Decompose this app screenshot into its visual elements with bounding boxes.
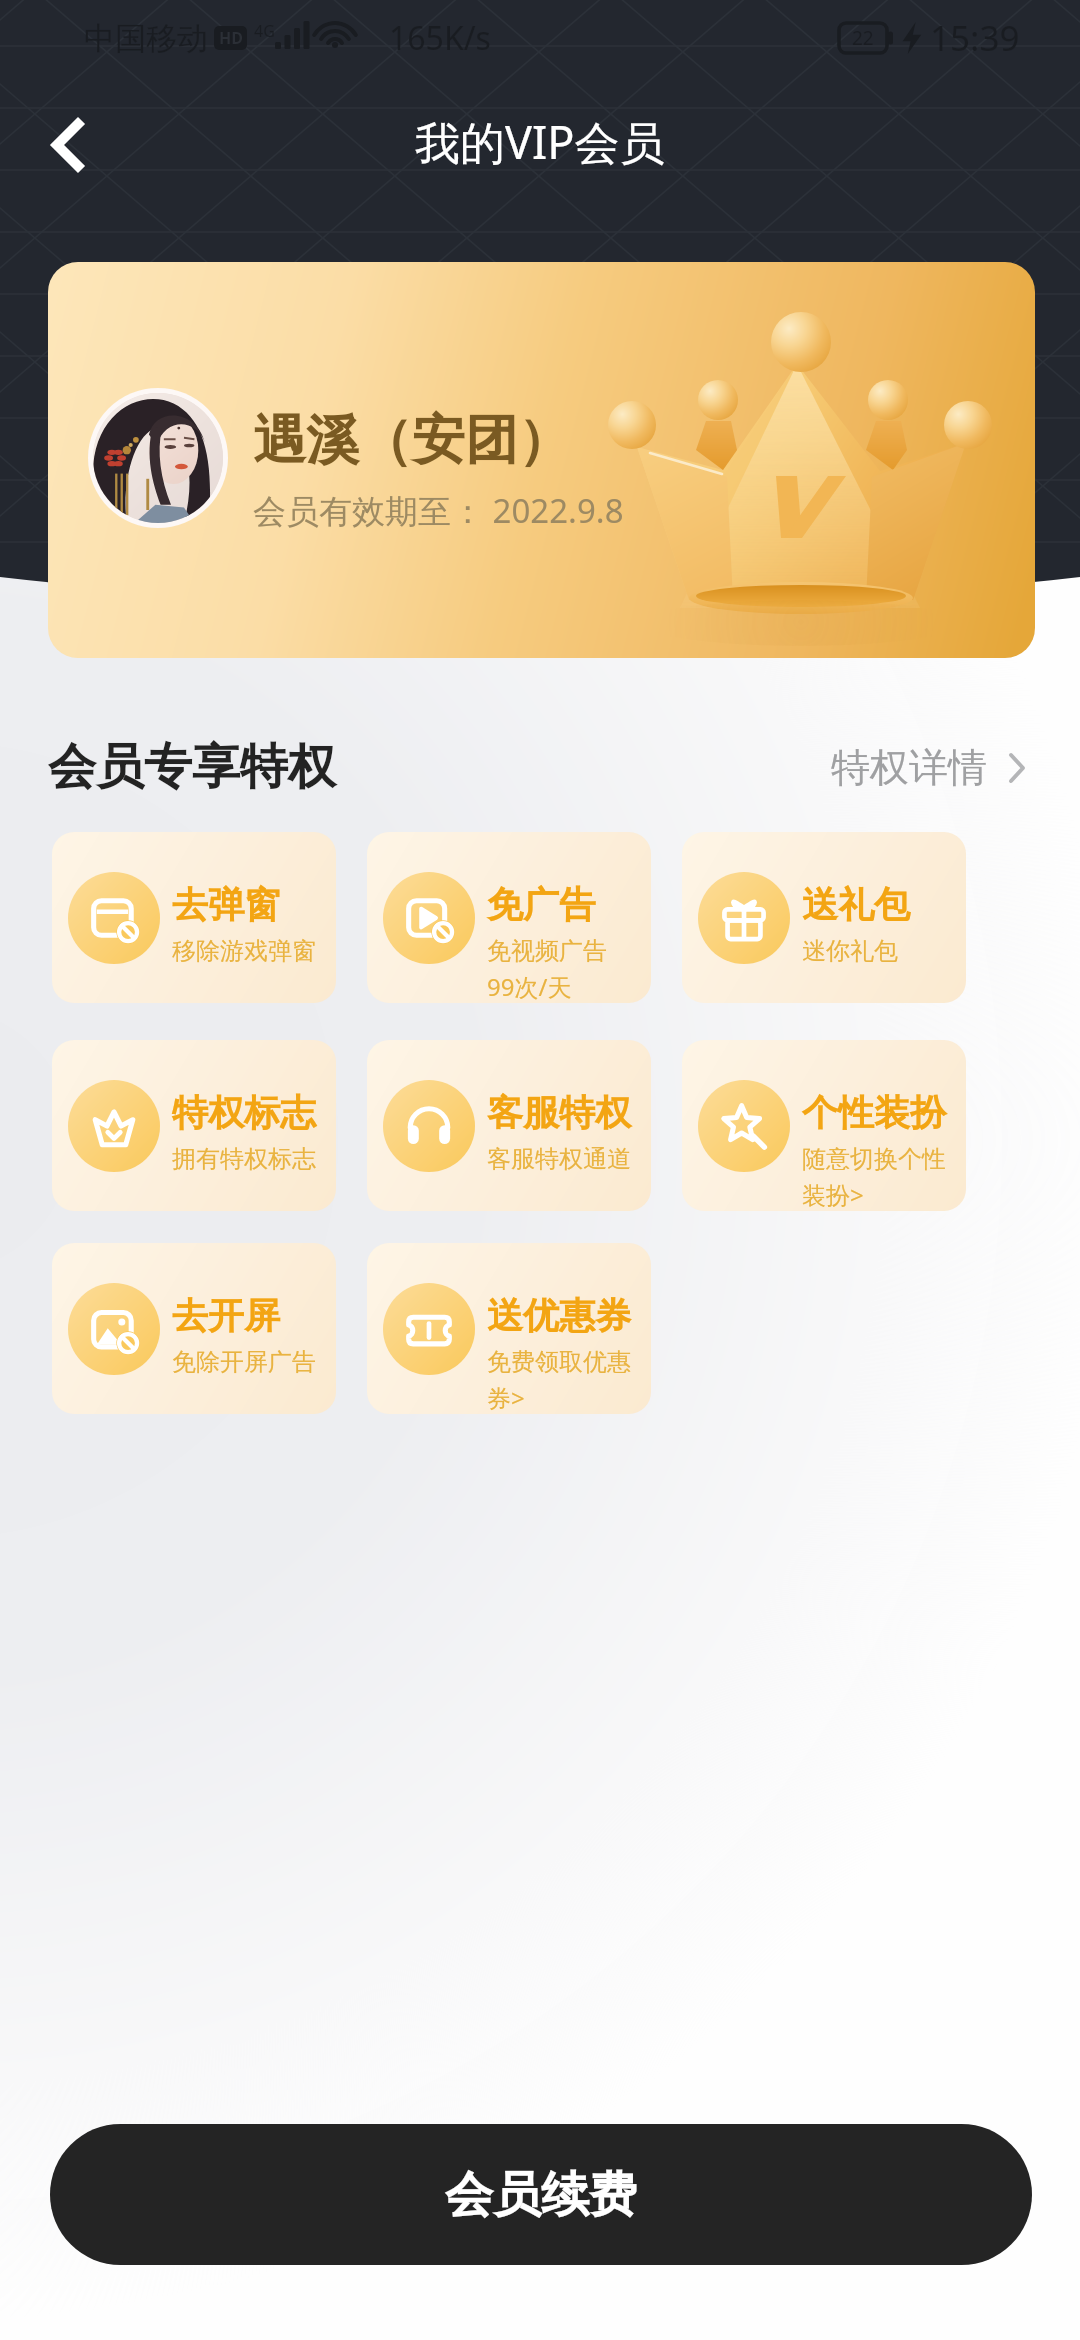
staticText: 22 xyxy=(852,25,874,51)
staticText: 迷你礼包 xyxy=(802,936,898,966)
staticText: 中国移动 xyxy=(84,19,208,58)
staticText: 随意切换个性 装扮> xyxy=(802,1144,946,1211)
staticText: 遇溪（安团） xyxy=(253,407,571,474)
button[interactable]: 去弹窗 xyxy=(52,832,336,1003)
staticText: 165K/s xyxy=(389,16,491,60)
button[interactable]: 送礼包 xyxy=(682,832,966,1003)
button[interactable]: 特权详情 xyxy=(831,743,1025,792)
staticText: 会员有效期至： 2022.9.8 xyxy=(253,488,624,533)
button[interactable]: Back xyxy=(24,102,110,188)
staticText: 送优惠券 xyxy=(487,1293,631,1338)
button[interactable]: 个性装扮 xyxy=(682,1040,966,1211)
button[interactable]: 去开屏 xyxy=(52,1243,336,1414)
staticText: 会员专享特权 xyxy=(48,737,336,797)
staticText: 15:39 xyxy=(930,14,1020,62)
staticText: 移除游戏弹窗 xyxy=(172,936,316,966)
button[interactable]: 遇溪（安团） xyxy=(48,262,1035,658)
staticText: 客服特权通道 xyxy=(487,1144,631,1174)
staticText: 客服特权 xyxy=(487,1090,631,1135)
staticText: 特权标志 xyxy=(172,1090,316,1135)
staticText: 特权详情 xyxy=(831,743,987,792)
staticText: HD xyxy=(219,27,243,49)
staticText: 去开屏 xyxy=(172,1293,280,1338)
staticText: 免除开屏广告 xyxy=(172,1347,316,1377)
staticText: 送礼包 xyxy=(802,882,910,927)
staticText: 会员续费 xyxy=(445,2165,637,2225)
staticText: 免视频广告 99次/天 xyxy=(487,936,607,1003)
button[interactable]: 会员续费 xyxy=(50,2124,1032,2265)
button[interactable]: 特权标志 xyxy=(52,1040,336,1211)
button[interactable]: 免广告 xyxy=(367,832,651,1003)
button[interactable]: 客服特权 xyxy=(367,1040,651,1211)
staticText: 免费领取优惠 券> xyxy=(487,1347,631,1414)
staticText: 免广告 xyxy=(487,882,595,927)
staticText: 个性装扮 xyxy=(802,1090,946,1135)
button[interactable]: 送优惠券 xyxy=(367,1243,651,1414)
staticText: 4G xyxy=(254,20,275,42)
staticText: 我的VIP会员 xyxy=(415,111,665,172)
staticText: 拥有特权标志 xyxy=(172,1144,316,1174)
staticText: 去弹窗 xyxy=(172,882,280,927)
